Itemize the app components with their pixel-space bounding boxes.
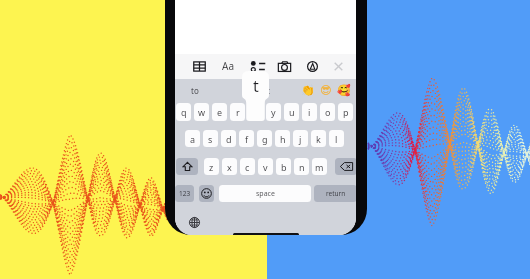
button[interactable]: l: [329, 130, 344, 147]
button[interactable]: return: [314, 185, 356, 202]
button[interactable]: y: [266, 103, 281, 121]
button[interactable]: 123: [175, 185, 194, 202]
staticText: w: [198, 106, 206, 118]
button[interactable]: Text format: [219, 58, 237, 74]
button[interactable]: x: [222, 158, 237, 175]
button[interactable]: i: [302, 103, 317, 121]
button[interactable]: r: [230, 103, 245, 121]
staticText: k: [316, 133, 321, 145]
staticText: 😎: [320, 84, 332, 97]
staticText: r: [236, 106, 240, 118]
button[interactable]: t: [242, 71, 269, 121]
button[interactable]: d: [221, 130, 236, 147]
button[interactable]: 😎: [317, 81, 335, 99]
button[interactable]: to: [180, 81, 210, 99]
staticText: g: [262, 133, 268, 145]
button[interactable]: Camera: [277, 59, 292, 74]
staticText: b: [281, 161, 287, 173]
staticText: z: [209, 161, 214, 173]
staticText: y: [271, 106, 276, 118]
staticText: t: [253, 75, 259, 97]
button[interactable]: Change keyboard: [189, 217, 200, 228]
staticText: f: [245, 133, 249, 145]
button[interactable]: Close: [331, 59, 346, 74]
staticText: 👏: [301, 84, 315, 97]
button[interactable]: 🥰: [335, 81, 353, 99]
staticText: e: [217, 106, 223, 118]
button[interactable]: f: [239, 130, 254, 147]
button[interactable]: Backspace: [335, 158, 356, 175]
button[interactable]: Checklist: [249, 59, 264, 74]
button[interactable]: Markup: [305, 59, 320, 74]
button[interactable]: e: [212, 103, 227, 121]
staticText: 123: [179, 189, 191, 198]
staticText: return: [326, 189, 346, 198]
staticText: n: [299, 161, 305, 173]
button[interactable]: Table: [192, 59, 207, 74]
staticText: c: [245, 161, 250, 173]
button[interactable]: space: [219, 185, 311, 202]
staticText: v: [263, 161, 268, 173]
staticText: t: [267, 85, 270, 96]
staticText: m: [315, 161, 324, 173]
button[interactable]: w: [194, 103, 209, 121]
button[interactable]: 👏: [299, 81, 317, 99]
button[interactable]: b: [276, 158, 291, 175]
button[interactable]: z: [204, 158, 219, 175]
staticText: i: [308, 106, 311, 118]
button[interactable]: j: [293, 130, 308, 147]
staticText: q: [181, 106, 187, 118]
button[interactable]: a: [185, 130, 200, 147]
button[interactable]: Emoji: [199, 185, 214, 202]
staticText: a: [190, 133, 196, 145]
button[interactable]: s: [203, 130, 218, 147]
button[interactable]: p: [338, 103, 353, 121]
button[interactable]: n: [294, 158, 309, 175]
button[interactable]: Shift: [176, 158, 198, 175]
button[interactable]: v: [258, 158, 273, 175]
staticText: x: [227, 161, 232, 173]
staticText: h: [280, 133, 286, 145]
staticText: p: [343, 106, 349, 118]
button[interactable]: g: [257, 130, 272, 147]
button[interactable]: t: [253, 81, 283, 99]
staticText: s: [208, 133, 213, 145]
button[interactable]: c: [240, 158, 255, 175]
staticText: o: [325, 106, 331, 118]
button[interactable]: o: [320, 103, 335, 121]
staticText: u: [289, 106, 295, 118]
staticText: d: [226, 133, 232, 145]
staticText: j: [299, 133, 302, 145]
button[interactable]: k: [311, 130, 326, 147]
staticText: space: [256, 189, 275, 199]
staticText: l: [335, 133, 338, 145]
button[interactable]: u: [284, 103, 299, 121]
button[interactable]: m: [312, 158, 327, 175]
staticText: 🥰: [337, 84, 351, 97]
button[interactable]: q: [176, 103, 191, 121]
staticText: to: [191, 85, 199, 96]
button[interactable]: h: [275, 130, 290, 147]
staticText: Aa: [222, 59, 234, 73]
